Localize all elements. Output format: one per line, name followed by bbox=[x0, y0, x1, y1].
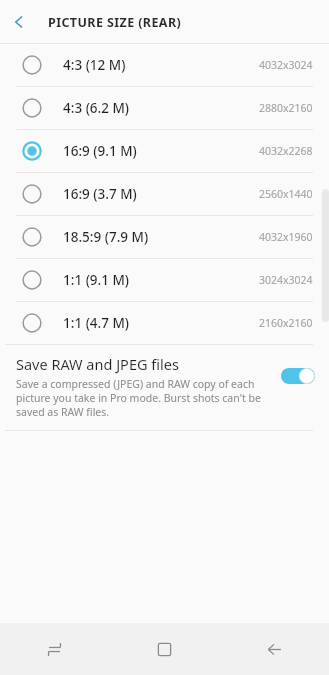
staticText: PICTURE SIZE (REAR) bbox=[48, 14, 182, 31]
staticText: 4032x3024 bbox=[259, 58, 313, 72]
staticText: 1:1 (9.1 M) bbox=[63, 271, 130, 289]
button[interactable]: Back bbox=[219, 623, 329, 675]
button[interactable]: 4:3 (6.2 M) bbox=[0, 87, 329, 129]
button[interactable]: Save RAW and JPEG files bbox=[0, 345, 329, 430]
button[interactable]: Back bbox=[0, 3, 38, 41]
staticText: Save RAW and JPEG files bbox=[16, 354, 179, 374]
button[interactable]: 16:9 (9.1 M) bbox=[0, 130, 329, 172]
staticText: 4032x2268 bbox=[259, 144, 313, 158]
staticText: 3024x3024 bbox=[259, 273, 313, 287]
button[interactable]: 1:1 (9.1 M) bbox=[0, 259, 329, 301]
button[interactable]: 1:1 (4.7 M) bbox=[0, 302, 329, 344]
staticText: 4:3 (12 M) bbox=[63, 56, 126, 74]
button[interactable]: Recents bbox=[0, 623, 109, 675]
staticText: 4032x1960 bbox=[259, 230, 313, 244]
button[interactable]: 4:3 (12 M) bbox=[0, 44, 329, 86]
staticText: 1:1 (4.7 M) bbox=[63, 314, 130, 332]
staticText: 2560x1440 bbox=[259, 187, 313, 201]
staticText: 16:9 (9.1 M) bbox=[63, 142, 137, 160]
staticText: Save a compressed (JPEG) and RAW copy of… bbox=[16, 377, 269, 419]
staticText: 2160x2160 bbox=[259, 316, 313, 330]
button[interactable]: 16:9 (3.7 M) bbox=[0, 173, 329, 215]
staticText: 2880x2160 bbox=[259, 101, 313, 115]
staticText: 16:9 (3.7 M) bbox=[63, 185, 137, 203]
staticText: 4:3 (6.2 M) bbox=[63, 99, 130, 117]
button[interactable]: 18.5:9 (7.9 M) bbox=[0, 216, 329, 258]
staticText: 18.5:9 (7.9 M) bbox=[63, 228, 149, 246]
button[interactable]: Home bbox=[109, 623, 219, 675]
